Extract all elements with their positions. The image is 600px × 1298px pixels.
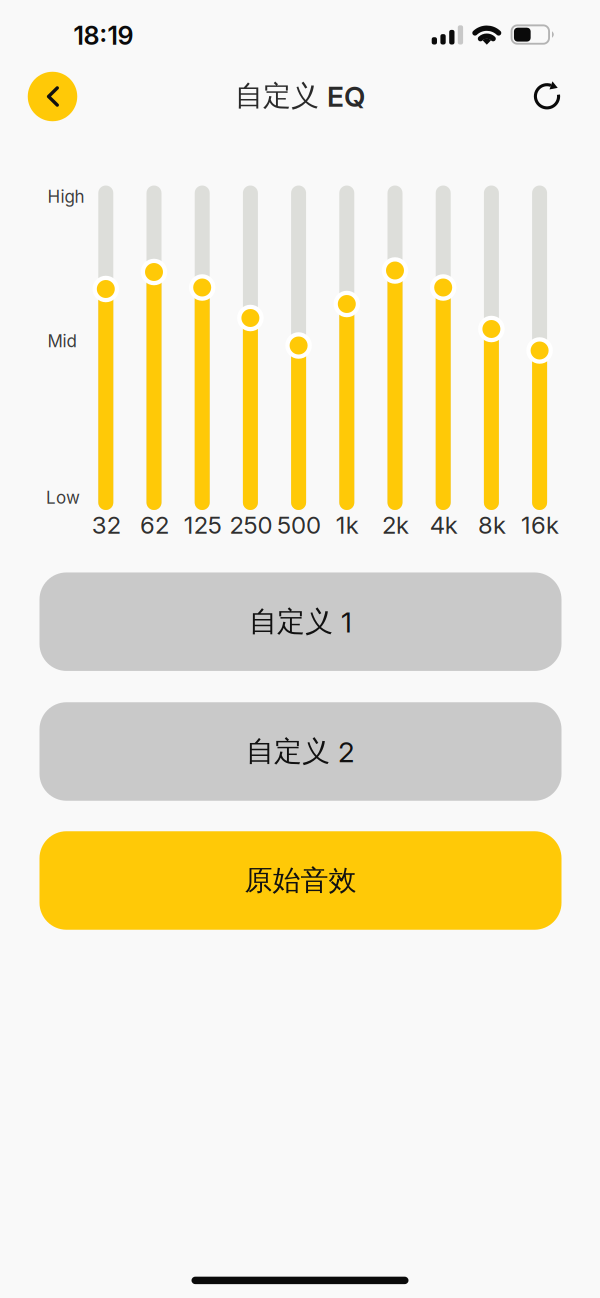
staticText: 250: [229, 511, 272, 539]
button[interactable]: Reset: [531, 80, 563, 112]
button[interactable]: 原始音效: [39, 831, 561, 930]
staticText: 16k: [521, 511, 559, 539]
staticText: High: [47, 186, 84, 207]
staticText: 自定义 2: [246, 734, 355, 769]
staticText: 原始音效: [244, 863, 356, 898]
staticText: 自定义 EQ: [235, 79, 365, 113]
staticText: 125: [184, 511, 222, 539]
staticText: Low: [46, 487, 80, 508]
staticText: 62: [140, 511, 169, 539]
staticText: 18:19: [73, 20, 133, 50]
staticText: 4k: [430, 511, 458, 539]
staticText: 1k: [336, 511, 359, 539]
staticText: Mid: [47, 331, 76, 351]
button[interactable]: 自定义 2: [39, 702, 561, 801]
staticText: 8k: [478, 511, 506, 539]
staticText: 2k: [382, 511, 409, 539]
staticText: 500: [277, 511, 321, 539]
staticText: 自定义 1: [249, 604, 352, 639]
staticText: 32: [92, 511, 121, 539]
button[interactable]: Back: [28, 72, 77, 121]
button[interactable]: 自定义 1: [39, 572, 561, 671]
